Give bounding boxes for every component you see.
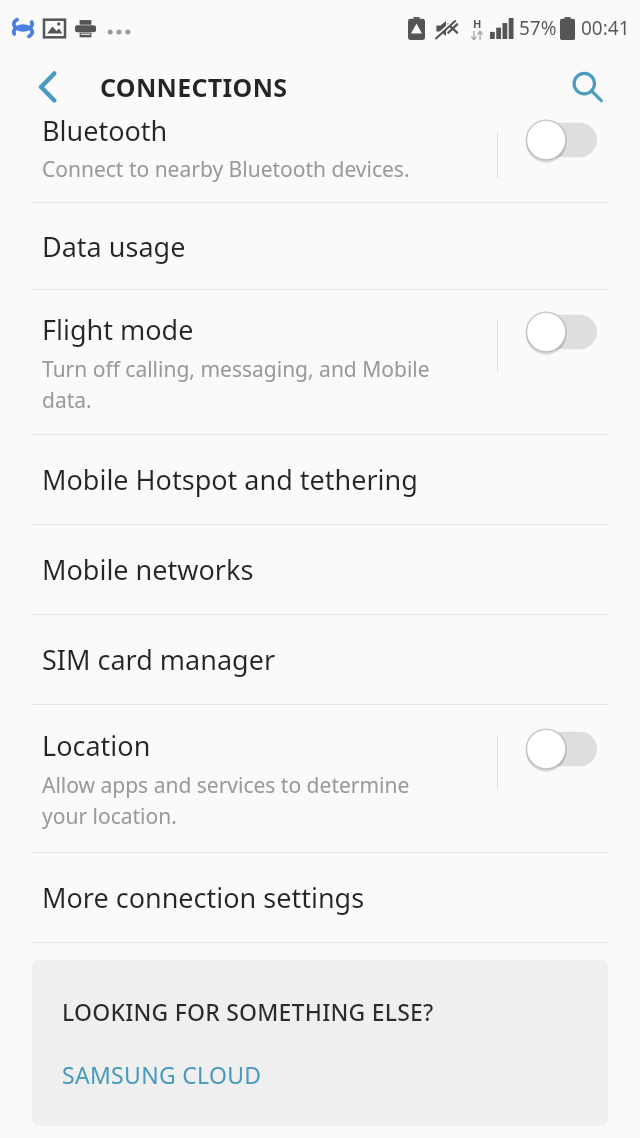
staticText: LOOKING FOR SOMETHING ELSE? <box>62 996 434 1027</box>
staticText: Connect to nearby Bluetooth devices. <box>42 155 410 184</box>
staticText: Turn off calling, messaging, and Mobile … <box>42 355 430 414</box>
staticText: 00:41 <box>581 15 630 41</box>
button[interactable]: SIM card manager <box>0 615 640 704</box>
staticText: H <box>473 16 482 31</box>
button[interactable]: Data usage <box>0 203 640 289</box>
staticText: CONNECTIONS <box>100 70 288 104</box>
button[interactable]: Bluetooth toggle <box>513 112 609 168</box>
button[interactable]: More connection settings <box>0 853 640 942</box>
staticText: Bluetooth <box>42 112 168 149</box>
button[interactable]: Bluetooth <box>0 119 640 202</box>
staticText: Mobile networks <box>42 551 254 588</box>
button[interactable]: Flight mode toggle <box>513 302 609 362</box>
staticText: More connection settings <box>42 879 365 916</box>
button[interactable]: Location <box>0 705 640 852</box>
staticText: SIM card manager <box>42 641 276 678</box>
button[interactable]: SAMSUNG CLOUD <box>62 1059 262 1090</box>
staticText: Allow apps and services to determine you… <box>42 771 410 830</box>
staticText: 57% <box>519 15 557 41</box>
button[interactable]: Flight mode <box>0 290 640 434</box>
button[interactable]: Back <box>22 61 74 113</box>
button[interactable]: Search <box>562 62 612 112</box>
button[interactable]: LOOKING FOR SOMETHING ELSE? <box>32 960 608 1126</box>
staticText: Data usage <box>42 228 186 265</box>
staticText: Mobile Hotspot and tethering <box>42 461 418 498</box>
staticText: Flight mode <box>42 311 194 348</box>
button[interactable]: Mobile networks <box>0 525 640 614</box>
button[interactable]: Mobile Hotspot and tethering <box>0 435 640 524</box>
button[interactable]: Location toggle <box>513 719 609 779</box>
staticText: Location <box>42 727 151 764</box>
